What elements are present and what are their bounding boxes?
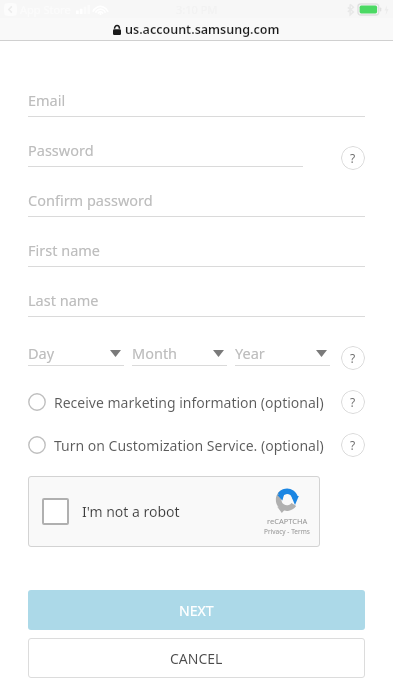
staticText: ?	[350, 150, 356, 166]
button[interactable]: Confirm password	[28, 183, 365, 233]
button[interactable]: Help	[341, 346, 365, 370]
button[interactable]: Last name	[28, 283, 365, 333]
button[interactable]: Month	[132, 341, 227, 375]
staticText: Day	[28, 343, 55, 363]
staticText: reCAPTCHA	[267, 516, 308, 526]
staticText: Privacy - Terms	[264, 527, 310, 536]
staticText: Email	[28, 90, 66, 110]
button[interactable]: Receive marketing information (optional)	[28, 389, 341, 415]
button[interactable]: Day	[28, 341, 124, 375]
staticText: Turn on Customization Service. (optional…	[54, 436, 324, 455]
staticText: First name	[28, 240, 101, 260]
button[interactable]: Turn on Customization Service. (optional…	[28, 432, 341, 458]
staticText: ?	[350, 394, 356, 410]
staticText: Confirm password	[28, 190, 153, 210]
button[interactable]: Password	[28, 133, 341, 183]
button[interactable]: First name	[28, 233, 365, 283]
button[interactable]: CANCEL	[28, 638, 365, 678]
button[interactable]: NEXT	[28, 590, 365, 630]
staticText: Password	[28, 140, 94, 160]
staticText: Last name	[28, 290, 99, 310]
button[interactable]: I'm not a robot checkbox	[28, 476, 320, 547]
staticText: ?	[350, 437, 356, 453]
staticText: us.account.samsung.com	[125, 21, 280, 38]
staticText: I'm not a robot	[82, 502, 180, 521]
button[interactable]: Year	[235, 341, 330, 375]
staticText: NEXT	[179, 601, 214, 620]
staticText: Year	[235, 343, 265, 363]
staticText: Receive marketing information (optional)	[54, 393, 324, 412]
staticText: ?	[350, 350, 356, 366]
button[interactable]: Email	[28, 83, 365, 133]
button[interactable]: Help	[341, 146, 365, 170]
button[interactable]: I'm not a robot checkbox	[42, 498, 69, 525]
button[interactable]: Help	[341, 390, 365, 414]
button[interactable]: Help	[341, 433, 365, 457]
button[interactable]: Address bar	[0, 18, 393, 40]
staticText: Month	[132, 343, 178, 363]
staticText: CANCEL	[170, 649, 223, 668]
